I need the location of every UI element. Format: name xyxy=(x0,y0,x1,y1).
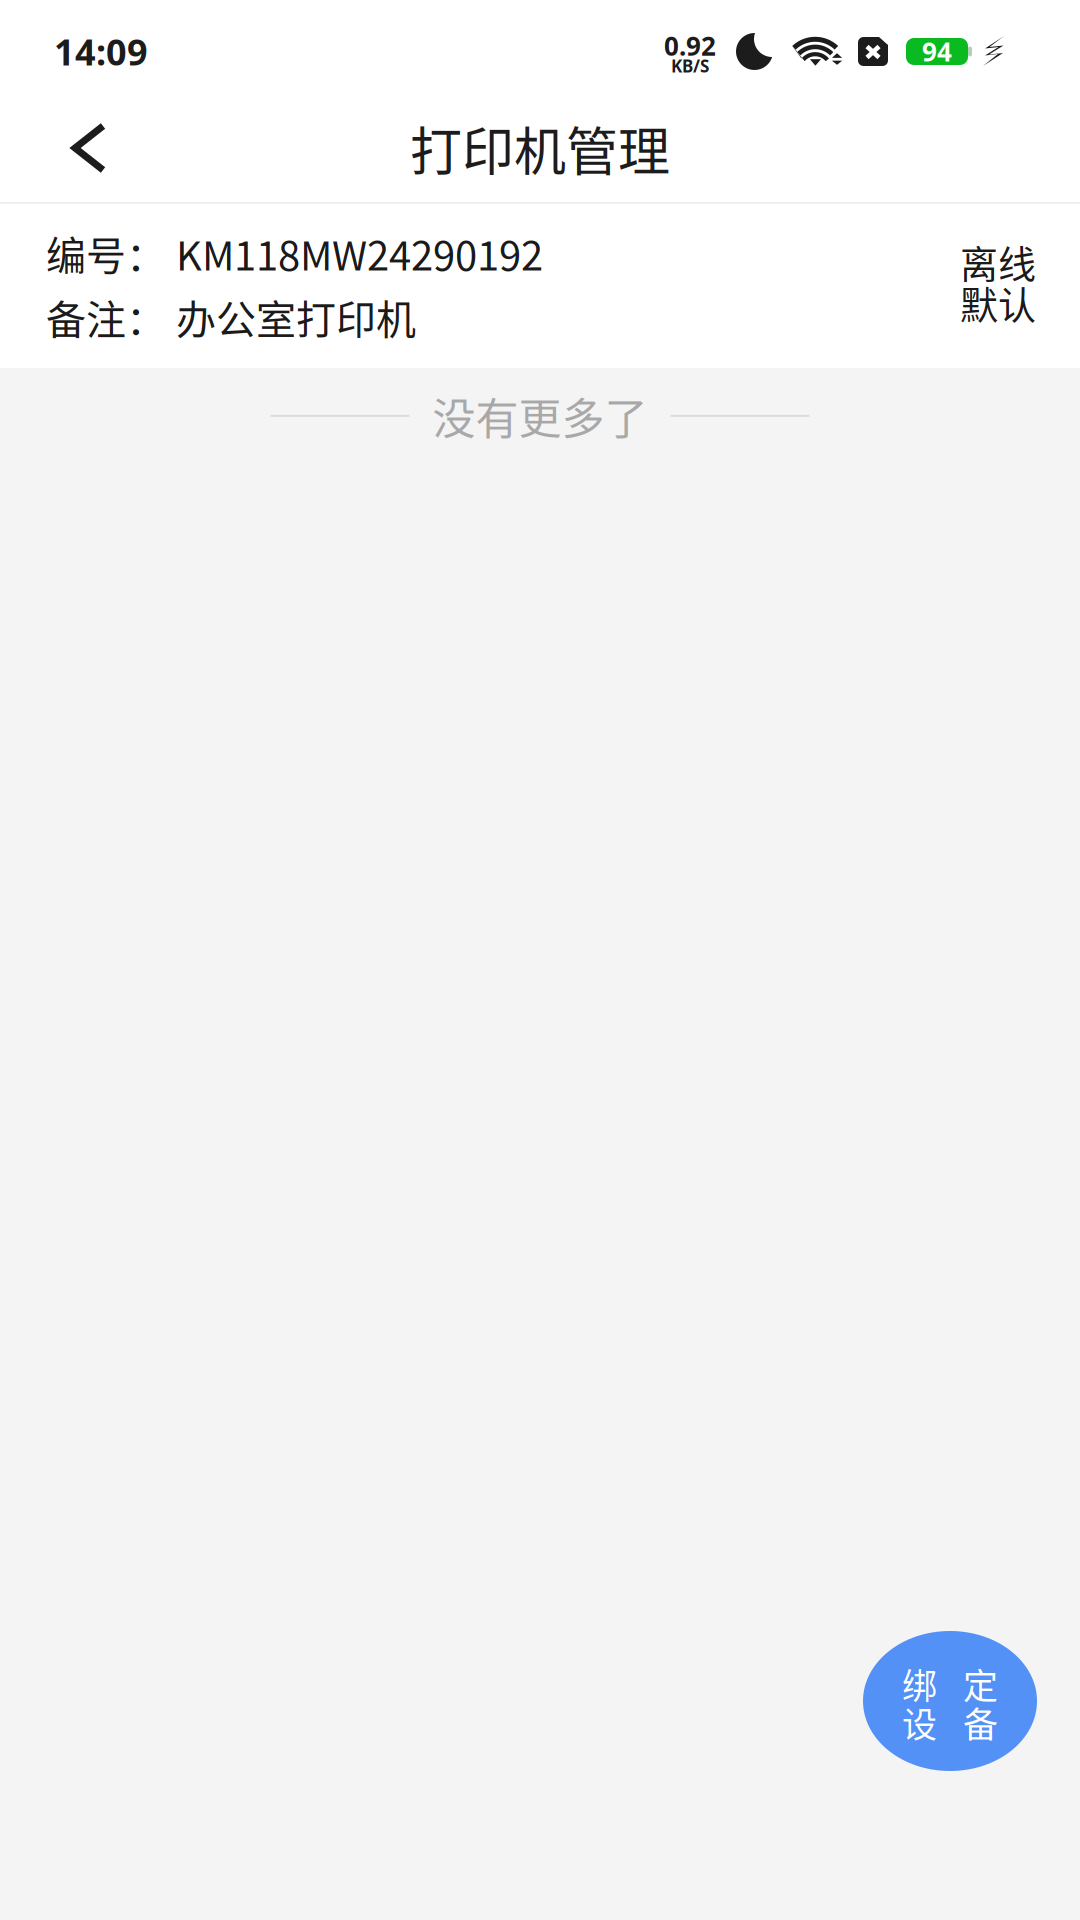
staticText: 设 xyxy=(902,1697,937,1748)
staticText: 办公室打印机 xyxy=(176,288,416,346)
staticText: 打印机管理 xyxy=(410,110,670,186)
staticText: 绑 xyxy=(902,1658,937,1709)
staticText: KM118MW24290192 xyxy=(176,224,543,282)
staticText: 默认 xyxy=(960,275,1036,330)
staticText: 没有更多了 xyxy=(432,385,647,447)
staticText: 备注： xyxy=(46,288,166,346)
button[interactable]: 编号： xyxy=(0,204,1080,368)
staticText: 离线 xyxy=(960,234,1036,289)
button[interactable]: 返回 xyxy=(37,92,149,204)
staticText: 定 xyxy=(963,1658,998,1709)
staticText: 编号： xyxy=(46,224,166,282)
staticText: 94 xyxy=(922,34,952,69)
staticText: KB/S xyxy=(671,54,709,78)
staticText: 14:09 xyxy=(54,27,148,76)
staticText: 备 xyxy=(963,1697,998,1748)
button[interactable]: 绑 xyxy=(863,1631,1037,1771)
staticText: 0.92 xyxy=(664,28,716,63)
